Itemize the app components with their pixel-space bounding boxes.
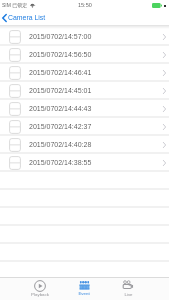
staticText: 2015/0702/14:46:41 <box>29 69 92 77</box>
staticText: Playback <box>31 292 49 297</box>
other: Playback <box>34 280 46 292</box>
staticText: 2015/0702/14:40:28 <box>29 141 92 149</box>
staticText: Event <box>78 291 90 296</box>
staticText: 2015/0702/14:56:50 <box>29 51 92 59</box>
staticText: 2015/0702/14:57:00 <box>29 33 92 41</box>
other: Battery <box>152 3 162 8</box>
staticText: SIM 已锁定 <box>2 2 28 8</box>
staticText: 2015/0702/14:45:01 <box>29 87 92 95</box>
button[interactable]: Select <box>0 82 169 100</box>
other: Select <box>9 102 21 116</box>
button[interactable]: Event <box>71 278 97 300</box>
other: Select <box>9 30 21 44</box>
other: Live <box>122 280 134 292</box>
staticText: 2015/0702/14:44:43 <box>29 105 92 113</box>
button[interactable]: Select <box>0 136 169 154</box>
button[interactable]: Select <box>0 118 169 136</box>
button[interactable]: Select <box>0 28 169 46</box>
other: Event <box>79 280 90 291</box>
button[interactable]: Live <box>115 278 141 300</box>
button[interactable]: Select <box>0 100 169 118</box>
other: Select <box>9 48 21 62</box>
other: Select <box>9 138 21 152</box>
staticText: Live <box>124 292 133 297</box>
other: Select <box>9 156 21 170</box>
button[interactable]: Select <box>0 154 169 172</box>
staticText: 2015/0702/14:42:37 <box>29 123 92 131</box>
other: Select <box>9 84 21 98</box>
staticText: 2015/0702/14:38:55 <box>29 159 92 167</box>
other: Select <box>9 66 21 80</box>
other: Select <box>9 120 21 134</box>
button[interactable]: Select <box>0 64 169 82</box>
staticText: Camera List <box>8 14 46 22</box>
staticText: 15:50 <box>78 2 92 8</box>
button[interactable]: Playback <box>27 278 53 300</box>
button[interactable]: Camera List <box>0 12 50 24</box>
button[interactable]: Select <box>0 46 169 64</box>
